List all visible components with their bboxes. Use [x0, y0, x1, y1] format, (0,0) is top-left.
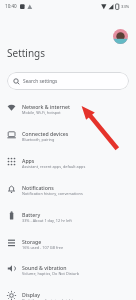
staticText: Battery — [22, 211, 41, 218]
staticText: Storage — [22, 238, 42, 245]
button[interactable] — [113, 29, 128, 44]
staticText: 33% — [121, 4, 130, 10]
staticText: Assistant, recent apps, default apps — [22, 164, 86, 169]
button[interactable]: Sound & vibration — [0, 256, 136, 283]
staticText: Dark theme, font size, brightness — [22, 298, 82, 300]
button[interactable]: Connected devices — [0, 122, 136, 149]
button[interactable]: Network & internet — [0, 95, 136, 122]
staticText: Connected devices — [22, 130, 69, 137]
staticText: Display — [22, 291, 41, 298]
staticText: Notifications — [22, 184, 54, 191]
staticText: Volume, haptics, Do Not Disturb — [22, 271, 80, 276]
button[interactable]: Display — [0, 283, 136, 300]
staticText: Network & internet — [22, 103, 70, 110]
staticText: Apps — [22, 157, 35, 164]
staticText: 33% - About 1 day, 12 hr left — [22, 218, 72, 223]
staticText: Search settings — [23, 78, 58, 85]
staticText: Settings — [7, 46, 46, 60]
staticText: Sound & vibration — [22, 264, 67, 271]
button[interactable]: Notifications — [0, 176, 136, 203]
staticText: 10:40 — [5, 3, 17, 9]
staticText: Mobile, Wi-Fi, hotspot — [22, 110, 61, 115]
staticText: Bluetooth, pairing — [22, 137, 55, 142]
button[interactable]: Battery — [0, 203, 136, 230]
button[interactable]: Storage — [0, 230, 136, 257]
staticText: Notification history, conversations — [22, 191, 83, 196]
staticText: 16% used - 107 GB free — [22, 245, 64, 250]
button[interactable]: Search settings — [7, 72, 129, 90]
button[interactable]: Apps — [0, 149, 136, 176]
